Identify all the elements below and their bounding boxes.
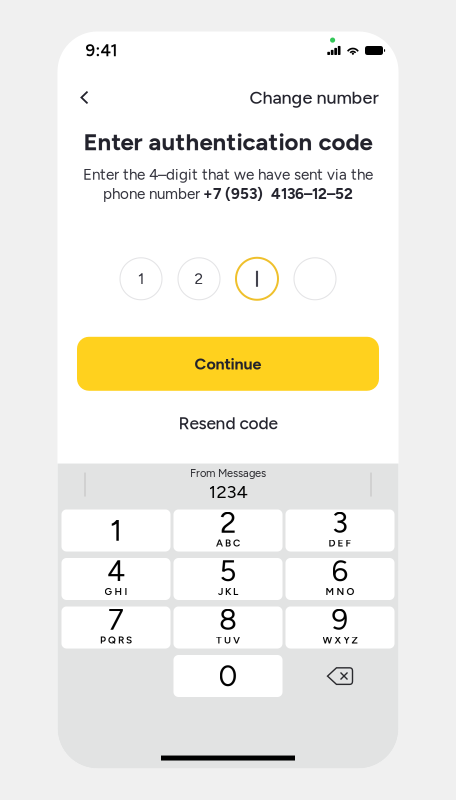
- staticText: 5: [219, 553, 236, 589]
- staticText: 9:41: [85, 40, 117, 60]
- button[interactable]: 1: [61, 509, 170, 551]
- staticText: 8: [219, 602, 237, 637]
- staticText: A B C: [216, 537, 240, 549]
- button[interactable]: 8: [173, 606, 282, 648]
- button[interactable]: Back: [67, 80, 101, 114]
- button[interactable]: 3: [285, 509, 394, 551]
- button[interactable]: 0: [173, 655, 282, 697]
- button[interactable]: Change number: [249, 79, 378, 116]
- staticText: Continue: [194, 354, 261, 373]
- staticText: 1234: [208, 481, 247, 503]
- staticText: 3: [332, 505, 348, 540]
- staticText: 1: [110, 513, 122, 548]
- button[interactable]: 2: [173, 509, 282, 551]
- staticText: 6: [331, 553, 348, 589]
- staticText: P Q R S: [100, 634, 132, 646]
- staticText: Enter authentication code: [83, 127, 372, 156]
- staticText: 9: [331, 602, 348, 637]
- staticText: Enter the 4–digit that we have sent via …: [83, 165, 373, 183]
- staticText: Resend code: [178, 413, 277, 434]
- staticText: 2: [220, 505, 236, 540]
- staticText: +7 (953) 4136–12–52: [203, 184, 353, 203]
- staticText: T U V: [216, 634, 240, 646]
- button[interactable]: 4: [61, 558, 170, 600]
- staticText: 2: [194, 270, 203, 288]
- staticText: G H I: [104, 586, 127, 598]
- staticText: 7: [108, 602, 124, 637]
- staticText: 1: [138, 270, 144, 288]
- staticText: J K L: [218, 586, 238, 598]
- staticText: From Messages: [190, 466, 266, 480]
- button[interactable]: Continue: [77, 337, 379, 391]
- button[interactable]: Delete: [285, 655, 394, 697]
- staticText: D E F: [328, 537, 351, 549]
- staticText: phone number: [103, 184, 200, 203]
- staticText: M N O: [325, 586, 354, 598]
- staticText: Change number: [249, 87, 378, 108]
- button[interactable]: 5: [173, 558, 282, 600]
- button[interactable]: 7: [61, 606, 170, 648]
- button[interactable]: 6: [285, 558, 394, 600]
- staticText: 4: [107, 553, 125, 589]
- staticText: 0: [218, 658, 237, 694]
- staticText: W X Y Z: [322, 634, 357, 646]
- button[interactable]: 9: [285, 606, 394, 648]
- button[interactable]: Resend code: [178, 407, 277, 440]
